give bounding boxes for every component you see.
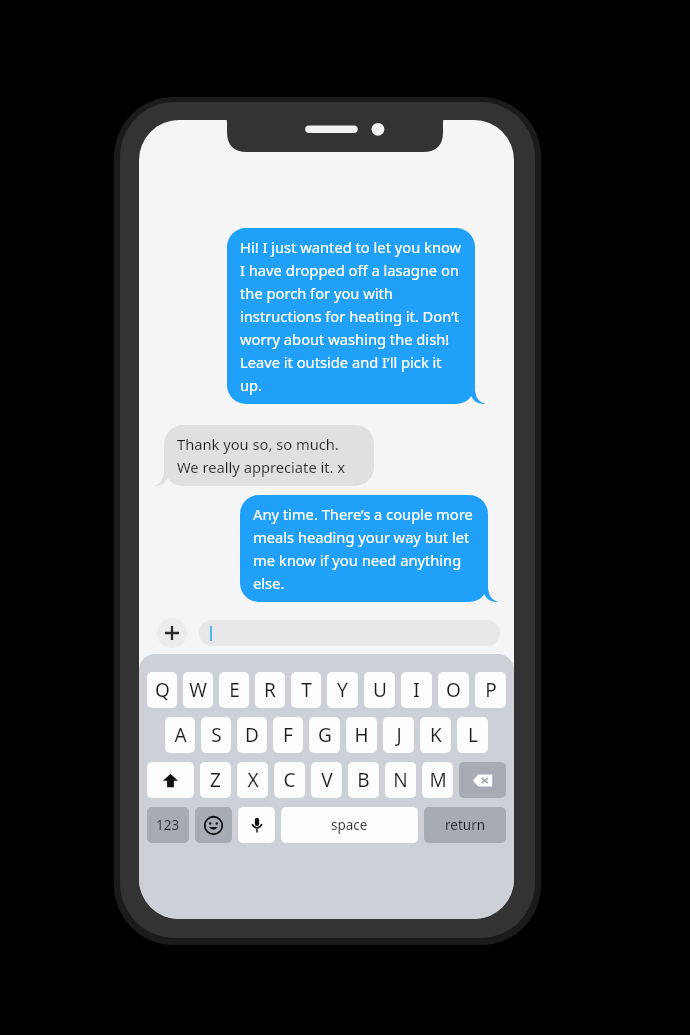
- staticText: N: [393, 767, 408, 793]
- staticText: P: [485, 677, 497, 703]
- button[interactable]: Add attachment: [157, 618, 187, 648]
- button[interactable]: Thank you so, so much. We really appreci…: [164, 425, 374, 486]
- staticText: Y: [337, 677, 348, 703]
- button[interactable]: Q: [147, 672, 177, 708]
- button[interactable]: Any time. There’s a couple more meals he…: [240, 495, 488, 602]
- button[interactable]: T: [291, 672, 321, 708]
- button[interactable]: H: [346, 717, 377, 753]
- button[interactable]: U: [364, 672, 395, 708]
- staticText: Any time. There’s a couple more meals he…: [253, 504, 475, 593]
- button[interactable]: Backspace: [459, 762, 506, 798]
- staticText: J: [396, 722, 402, 748]
- button[interactable]: V: [311, 762, 342, 798]
- staticText: Q: [155, 677, 170, 703]
- button[interactable]: F: [273, 717, 303, 753]
- staticText: C: [283, 767, 296, 793]
- staticText: O: [446, 677, 461, 703]
- staticText: F: [283, 722, 293, 748]
- button[interactable]: 123: [147, 807, 189, 843]
- staticText: V: [321, 767, 333, 793]
- staticText: Z: [210, 767, 221, 793]
- button[interactable]: W: [183, 672, 213, 708]
- staticText: E: [229, 677, 240, 703]
- button[interactable]: K: [420, 717, 451, 753]
- staticText: 123: [156, 816, 180, 834]
- staticText: T: [301, 677, 312, 703]
- staticText: W: [189, 677, 207, 703]
- staticText: D: [245, 722, 259, 748]
- button[interactable]: N: [385, 762, 416, 798]
- staticText: U: [373, 677, 387, 703]
- staticText: space: [331, 816, 368, 834]
- button[interactable]: Emoji: [195, 807, 232, 843]
- staticText: R: [264, 677, 276, 703]
- button[interactable]: D: [237, 717, 267, 753]
- button[interactable]: Hi! I just wanted to let you know I have…: [227, 228, 475, 404]
- staticText: K: [430, 722, 442, 748]
- staticText: X: [247, 767, 259, 793]
- button[interactable]: M: [422, 762, 453, 798]
- staticText: B: [357, 767, 370, 793]
- button[interactable]: A: [165, 717, 195, 753]
- staticText: I: [413, 677, 420, 703]
- button[interactable]: Shift: [147, 762, 194, 798]
- button[interactable]: L: [457, 717, 488, 753]
- button[interactable]: J: [383, 717, 414, 753]
- button[interactable]: space: [281, 807, 418, 843]
- staticText: A: [174, 722, 187, 748]
- staticText: Thank you so, so much. We really appreci…: [177, 434, 361, 477]
- staticText: M: [429, 767, 447, 793]
- staticText: Hi! I just wanted to let you know I have…: [240, 237, 462, 395]
- button[interactable]: X: [237, 762, 268, 798]
- button[interactable]: R: [255, 672, 285, 708]
- button[interactable]: B: [348, 762, 379, 798]
- button[interactable]: C: [274, 762, 305, 798]
- button[interactable]: Z: [200, 762, 231, 798]
- staticText: G: [318, 722, 332, 748]
- staticText: return: [445, 816, 486, 834]
- staticText: S: [211, 722, 222, 748]
- button[interactable]: Dictate: [238, 807, 275, 843]
- button[interactable]: I: [401, 672, 432, 708]
- button[interactable]: P: [475, 672, 506, 708]
- button[interactable]: O: [438, 672, 469, 708]
- button[interactable]: G: [309, 717, 340, 753]
- button[interactable]: return: [424, 807, 506, 843]
- button[interactable]: E: [219, 672, 249, 708]
- staticText: L: [468, 722, 478, 748]
- button[interactable]: [199, 620, 500, 646]
- button[interactable]: S: [201, 717, 231, 753]
- button[interactable]: Y: [327, 672, 358, 708]
- staticText: H: [354, 722, 369, 748]
